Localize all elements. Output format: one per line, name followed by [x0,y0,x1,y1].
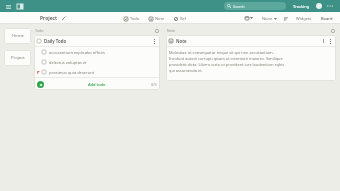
staticText: Todo [130,16,140,21]
button[interactable]: Edit project name [61,15,67,21]
staticText: Note [176,38,187,44]
button[interactable]: Toggle panel [15,2,24,11]
button[interactable]: Ref [173,16,188,21]
button[interactable]: More [151,38,157,44]
staticText: Note [155,16,165,21]
staticText: Board [321,16,333,21]
staticText: delectus voluptas et [49,60,87,65]
button[interactable]: Add todo item [37,81,44,88]
staticText: Tracking [293,4,310,9]
button[interactable]: Tracking [292,4,311,9]
staticText: Note [167,28,176,33]
staticText: provident dicta. Libero iusto ut provide… [169,62,285,67]
button[interactable]: Sort [282,15,289,22]
staticText: Project [11,55,25,61]
staticText: 0/3 [151,82,157,87]
button[interactable]: Board [320,16,334,21]
button[interactable]: Expand note [320,38,326,44]
staticText: Incidunt autem corrupti ipsam ut invento… [169,56,283,61]
staticText: accusantium explicabo officiis [49,50,105,55]
staticText: Molestiae ut consequatur neque sit qui n… [169,50,274,55]
staticText: None [262,16,273,21]
button[interactable]: Section options [154,28,159,33]
button[interactable]: Widgets [295,16,313,21]
button[interactable]: Home [4,28,31,44]
button[interactable]: Account [316,3,322,9]
button[interactable]: Search [224,2,286,10]
button[interactable]: Note [148,16,166,21]
button[interactable]: More options [326,2,334,10]
staticText: Daily Todo [44,38,67,44]
button[interactable] [244,16,254,20]
button[interactable]: Note [166,35,336,46]
button[interactable]: Project [40,15,58,22]
button[interactable]: Todo [123,16,141,21]
staticText: Add todo [88,82,106,87]
staticText: Search [233,4,245,9]
staticText: Home [12,33,24,39]
button[interactable]: None [261,16,278,21]
staticText: possimus quia deserunt [49,70,95,75]
button[interactable]: possimus quia deserunt [34,67,160,77]
staticText: Ref [180,16,187,21]
button[interactable]: delectus voluptas et [34,57,160,67]
staticText: Todo [35,28,44,33]
staticText: Project [40,15,58,22]
button[interactable]: Menu [4,2,13,11]
staticText: qui assumenda et. [169,68,203,73]
button[interactable]: Daily Todo [34,35,160,46]
button[interactable]: Add todo [88,82,106,87]
button[interactable]: More [327,38,333,44]
button[interactable]: Section options [330,28,335,33]
button[interactable]: Project [4,50,31,66]
staticText: Widgets [296,16,312,21]
button[interactable]: accusantium explicabo officiis [34,47,160,57]
